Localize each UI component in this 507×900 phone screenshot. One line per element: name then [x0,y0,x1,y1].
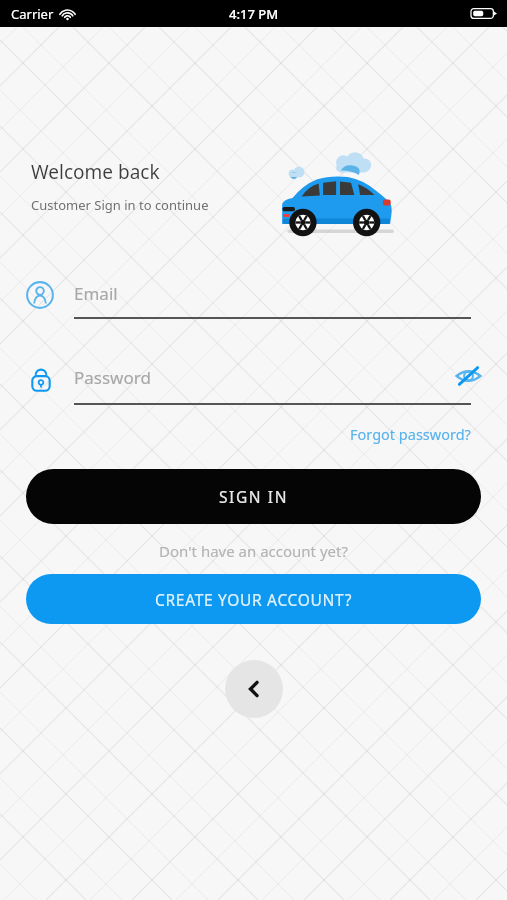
staticText: Carrier [11,5,54,23]
button[interactable]: Email field [0,267,507,323]
button[interactable]: SIGN IN [26,469,481,524]
staticText: CREATE YOUR ACCOUNT? [155,589,353,610]
button[interactable]: Back [225,660,283,718]
button[interactable]: Show password [451,359,485,393]
staticText: Welcome back [31,159,160,185]
other: Email field [26,281,54,309]
button[interactable]: Password field [0,351,507,407]
button[interactable]: CREATE YOUR ACCOUNT? [26,574,481,624]
staticText: SIGN IN [219,486,289,507]
staticText: Customer Sign in to continue [31,196,209,214]
staticText: Password [74,366,151,389]
staticText: 4:17 PM [229,5,279,23]
other: Password field [27,362,55,394]
button[interactable]: Forgot password? [344,421,477,447]
staticText: Email [74,282,118,305]
staticText: Don't have an account yet? [159,541,348,561]
staticText: Forgot password? [350,424,471,444]
